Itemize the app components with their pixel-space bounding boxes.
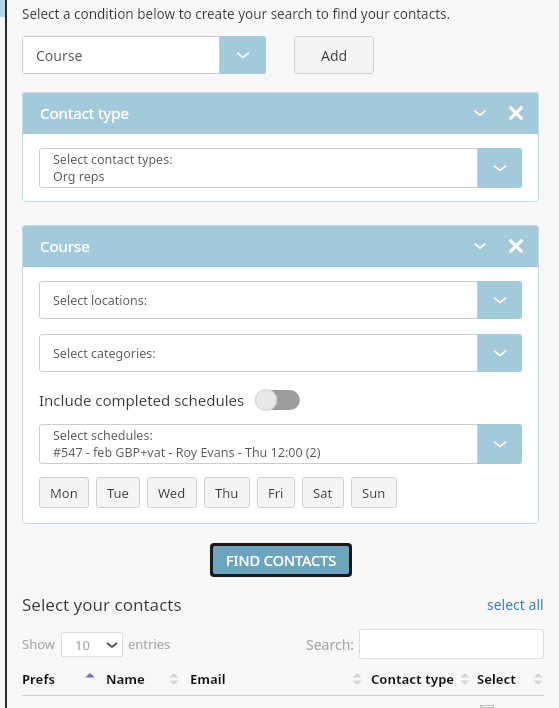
staticText: Prefs [22, 670, 55, 688]
staticText: Mon [50, 484, 78, 502]
staticText: Select your contacts [22, 593, 182, 616]
staticText: Name [106, 670, 145, 688]
staticText: select all [487, 595, 544, 614]
staticText: Select [477, 670, 516, 688]
staticText: Include completed schedules [39, 390, 245, 410]
staticText: Wed [158, 484, 186, 502]
staticText: Add [321, 46, 348, 65]
staticText: Select locations: [53, 292, 148, 309]
staticText: 10 [61, 636, 104, 654]
button[interactable]: Sun [351, 477, 397, 508]
button[interactable]: Mon [39, 477, 89, 508]
staticText: Search: [306, 635, 355, 654]
button[interactable]: Thu [204, 477, 250, 508]
button[interactable]: Select [477, 670, 516, 688]
button[interactable]: Email [190, 670, 351, 688]
button[interactable]: Tue [96, 477, 140, 508]
staticText: Select a condition below to create your … [22, 5, 451, 23]
staticText: Contact type [371, 670, 455, 688]
button[interactable] [359, 629, 544, 659]
button[interactable]: Select locations: [39, 281, 522, 319]
staticText: Thu [215, 484, 239, 502]
staticText: #547 - feb GBP+vat - Roy Evans - Thu 12:… [53, 444, 321, 461]
staticText: FIND CONTACTS [226, 550, 337, 570]
staticText: Select categories: [53, 345, 156, 362]
button[interactable]: Include completed schedules [39, 389, 300, 411]
button[interactable]: Select contact types: [39, 148, 522, 188]
button[interactable]: Wed [147, 477, 197, 508]
staticText: Contact type [40, 103, 129, 123]
staticText: Email [190, 670, 226, 688]
staticText: Course [36, 46, 83, 65]
staticText: Fri [268, 484, 284, 502]
button[interactable]: Sat [302, 477, 344, 508]
staticText: Org reps [53, 168, 105, 185]
staticText: Sun [362, 484, 386, 502]
button[interactable]: Add [294, 36, 374, 74]
button[interactable]: Remove condition [505, 102, 527, 124]
button[interactable]: Contact type [371, 670, 455, 688]
staticText: Select contact types: [53, 151, 173, 168]
button[interactable]: 10 [61, 632, 123, 657]
button[interactable]: Course [22, 36, 266, 74]
staticText: Sat [313, 484, 333, 502]
button[interactable]: Name [106, 670, 168, 688]
button[interactable]: FIND CONTACTS [213, 546, 349, 574]
button[interactable]: Fri [257, 477, 295, 508]
staticText: Select schedules: [53, 427, 153, 444]
button[interactable]: Collapse [469, 235, 491, 257]
staticText: entries [128, 635, 171, 653]
button[interactable]: Remove condition [505, 235, 527, 257]
button[interactable]: James Carr [22, 705, 544, 708]
button[interactable]: Select schedules: [39, 424, 522, 464]
button[interactable]: Select categories: [39, 334, 522, 372]
staticText: Tue [107, 484, 129, 502]
button[interactable]: select all [487, 595, 544, 614]
staticText: Show [22, 635, 55, 653]
staticText: Course [40, 236, 90, 256]
button[interactable]: Collapse [469, 102, 491, 124]
button[interactable]: Prefs [22, 670, 84, 688]
